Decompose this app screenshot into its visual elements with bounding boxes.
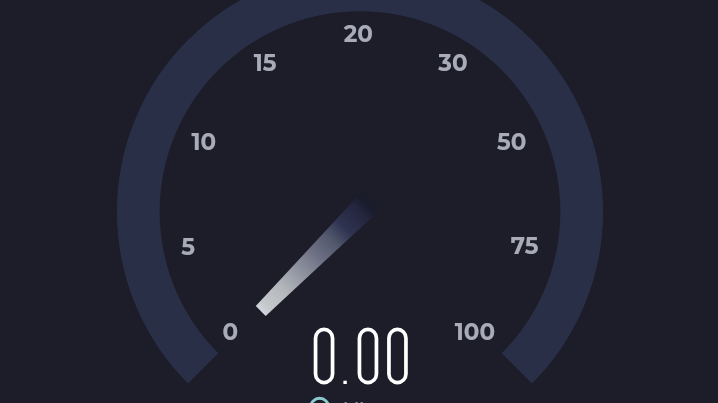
button[interactable]: Speed test gauge	[0, 0, 718, 403]
